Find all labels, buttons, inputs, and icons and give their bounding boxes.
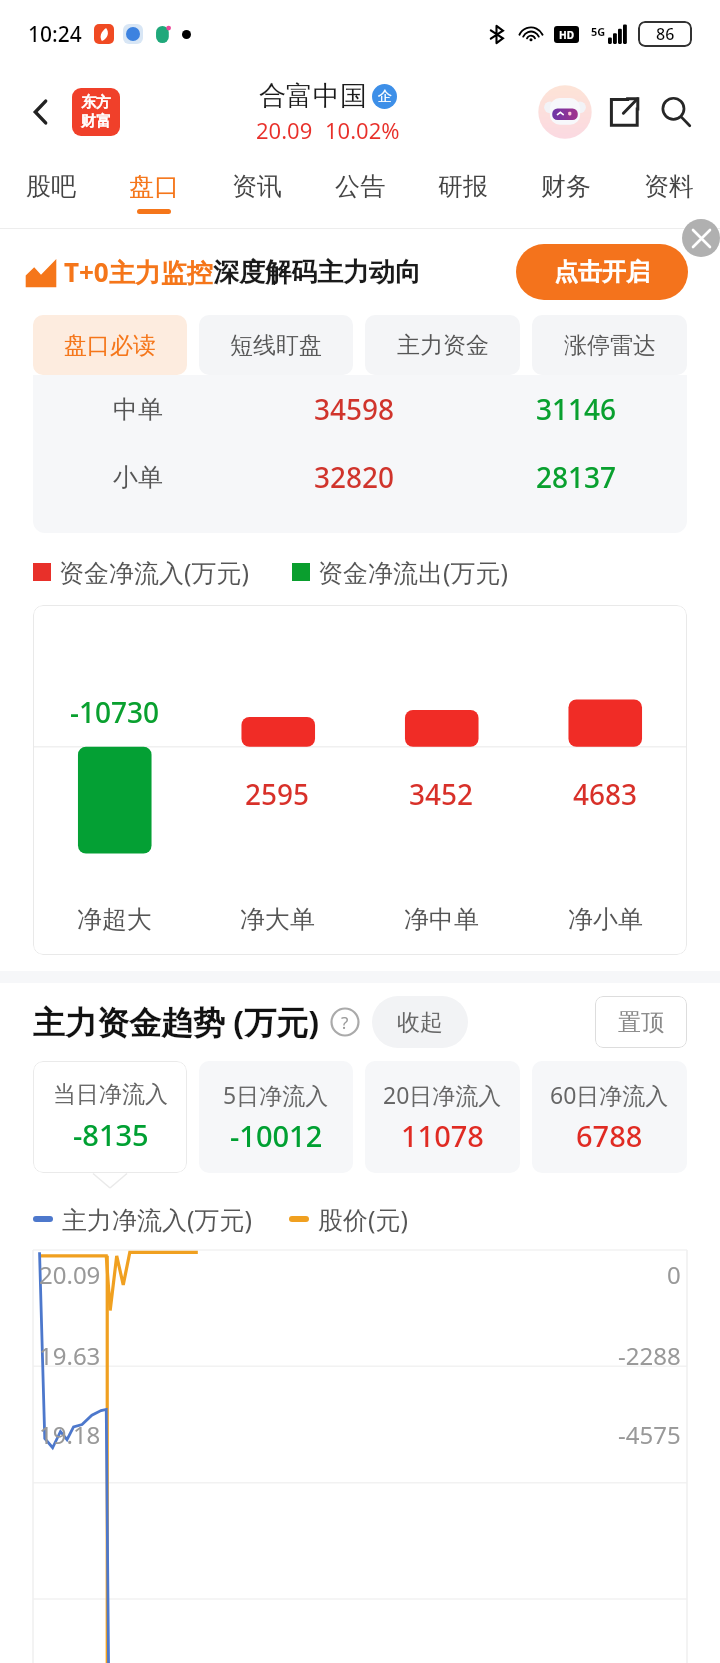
staticText: 收起: [397, 1008, 443, 1037]
staticText: 28137: [536, 458, 617, 496]
staticText: 财务: [541, 171, 591, 202]
staticText: 财富: [81, 112, 111, 131]
staticText: 当日净流入: [53, 1080, 168, 1109]
staticText: 中单: [113, 394, 163, 425]
staticText: 20.09: [39, 1258, 101, 1291]
button[interactable]: T+0主力监控: [24, 229, 688, 315]
staticText: 32820: [314, 458, 395, 496]
staticText: -4575: [618, 1418, 681, 1451]
button[interactable]: 置顶: [595, 996, 687, 1048]
staticText: 研报: [438, 171, 488, 202]
button[interactable]: 收起: [372, 996, 468, 1048]
button[interactable]: 当日净流入: [33, 1061, 187, 1173]
staticText: 小单: [113, 462, 163, 493]
button[interactable]: 60日净流入: [532, 1061, 687, 1173]
staticText: 10.02%: [325, 115, 400, 145]
button[interactable]: Search: [650, 86, 702, 138]
button[interactable]: 股吧: [0, 156, 102, 228]
staticText: 企: [378, 88, 392, 106]
staticText: 置顶: [618, 1008, 664, 1037]
staticText: 点击开启: [554, 257, 650, 287]
staticText: 60日净流入: [550, 1079, 669, 1110]
staticText: 公告: [335, 171, 385, 202]
button[interactable]: Share: [598, 86, 650, 138]
button[interactable]: AI assistant: [536, 83, 594, 141]
staticText: -10012: [230, 1116, 323, 1155]
staticText: 20.09: [256, 115, 313, 145]
button[interactable]: 盘口必读: [33, 315, 187, 375]
staticText: 资料: [644, 171, 694, 202]
button[interactable]: 点击开启: [516, 244, 688, 300]
button[interactable]: 资讯: [205, 156, 308, 228]
staticText: 东方: [81, 93, 111, 112]
staticText: 资金净流入(万元): [59, 555, 250, 589]
staticText: 86: [656, 23, 675, 45]
staticText: 34598: [314, 390, 395, 428]
staticText: 资讯: [232, 171, 282, 202]
staticText: 4683: [573, 775, 638, 813]
staticText: 净大单: [240, 904, 315, 935]
staticText: -2288: [618, 1339, 681, 1372]
staticText: 20日净流入: [383, 1079, 502, 1110]
staticText: 盘口: [129, 171, 179, 202]
staticText: 净小单: [568, 904, 643, 935]
staticText: T+0主力监控: [64, 254, 213, 290]
staticText: 净超大: [77, 904, 152, 935]
staticText: 合富中国: [259, 79, 367, 113]
button[interactable]: 涨停雷达: [532, 315, 687, 375]
staticText: ?: [341, 1011, 349, 1034]
staticText: 主力资金: [397, 331, 489, 360]
staticText: 31146: [536, 390, 617, 428]
staticText: 涨停雷达: [564, 331, 656, 360]
button[interactable]: 公告: [308, 156, 411, 228]
staticText: -8135: [73, 1115, 149, 1154]
button[interactable]: 研报: [411, 156, 514, 228]
staticText: 资金净流出(万元): [318, 555, 509, 589]
button[interactable]: Close: [682, 219, 720, 257]
staticText: HD: [559, 28, 574, 42]
staticText: 5日净流入: [223, 1079, 329, 1110]
button[interactable]: Back: [18, 89, 64, 135]
staticText: 10:24: [28, 20, 82, 49]
button[interactable]: East Money logo: [72, 88, 120, 136]
button[interactable]: 主力资金: [365, 315, 520, 375]
staticText: 盘口必读: [64, 331, 156, 360]
staticText: 深度解码主力动向: [213, 256, 421, 289]
staticText: -10730: [70, 693, 160, 731]
staticText: 5G: [591, 24, 606, 39]
staticText: 3452: [409, 775, 474, 813]
staticText: 6788: [576, 1116, 643, 1155]
button[interactable]: 财务: [514, 156, 617, 228]
staticText: 股吧: [26, 171, 76, 202]
staticText: 11078: [401, 1116, 484, 1155]
button[interactable]: Help: [330, 1007, 360, 1037]
staticText: 2595: [245, 775, 310, 813]
button[interactable]: 5日净流入: [199, 1061, 353, 1173]
staticText: 19.63: [39, 1339, 101, 1372]
staticText: 主力净流入(万元): [62, 1202, 253, 1236]
button[interactable]: 盘口: [102, 156, 205, 228]
staticText: 0: [667, 1258, 681, 1291]
staticText: 19.18: [39, 1418, 101, 1451]
button[interactable]: 20日净流入: [365, 1061, 520, 1173]
staticText: 股价(元): [318, 1202, 409, 1236]
button[interactable]: 短线盯盘: [199, 315, 353, 375]
staticText: 主力资金趋势 (万元): [33, 1000, 320, 1044]
staticText: 净中单: [404, 904, 479, 935]
staticText: 短线盯盘: [230, 331, 322, 360]
button[interactable]: 资料: [617, 156, 720, 228]
